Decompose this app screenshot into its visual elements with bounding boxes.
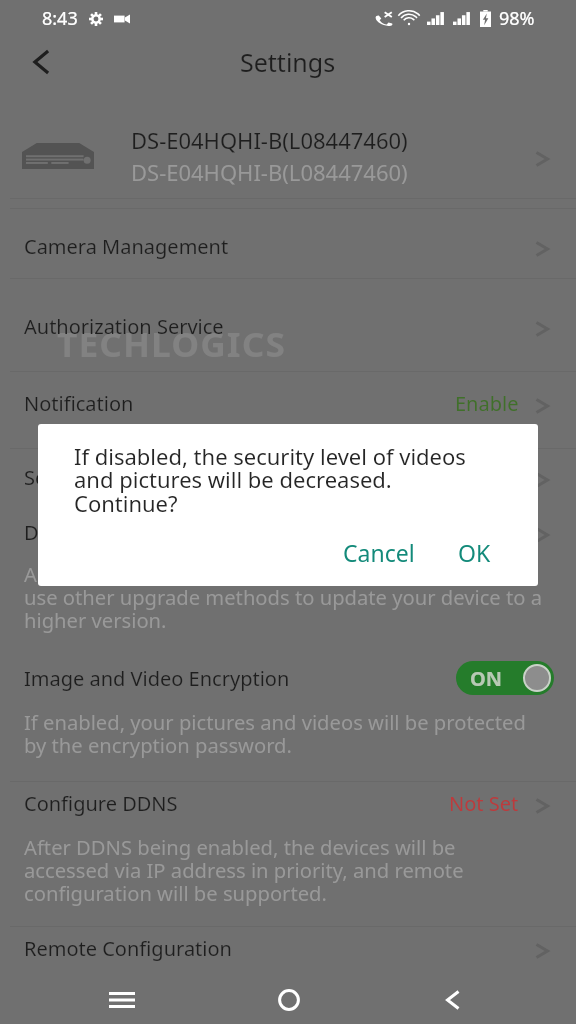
button[interactable]: OK (446, 530, 503, 574)
button[interactable]: Device Version (0, 507, 576, 557)
staticText: DS-E04HQHI-B(L08447460) (131, 157, 408, 187)
button[interactable]: Authorization Service (0, 301, 576, 351)
staticText: Authorization Service (24, 313, 224, 340)
staticText: 98% (499, 6, 535, 31)
button[interactable]: Back (0, 36, 82, 88)
button[interactable]: Security Question (0, 452, 576, 502)
staticText: Not Set (449, 790, 519, 817)
staticText: After DDNS being enabled, the devices wi… (24, 833, 576, 907)
staticText: DS-E04HQHI-B(L08447460) (131, 125, 408, 155)
staticText: Camera Management (24, 233, 229, 260)
button[interactable]: Configure DDNS (0, 778, 576, 828)
button[interactable]: Cancel (331, 530, 427, 574)
staticText: V4.30.000 build 2024 (324, 519, 519, 546)
button[interactable]: Remote Configuration (0, 923, 576, 973)
button[interactable]: Image and Video Encryption (0, 650, 576, 706)
staticText: Image and Video Encryption (24, 665, 290, 692)
staticText: Cancel (343, 537, 415, 568)
button[interactable]: Camera Management (0, 221, 576, 271)
staticText: Remote Configuration (24, 935, 232, 962)
button[interactable]: ON (456, 661, 554, 695)
staticText: A newer version is available. It is reco… (24, 560, 576, 634)
staticText: If enabled, your pictures and videos wil… (24, 708, 576, 759)
staticText: Notification (24, 390, 134, 417)
staticText: OK (458, 537, 491, 568)
button[interactable]: Back (423, 976, 483, 1024)
button[interactable]: Notification (0, 378, 576, 428)
staticText: Settings (240, 45, 336, 79)
staticText: ON (470, 665, 503, 692)
button[interactable]: Home (259, 976, 319, 1024)
staticText: 8:43 (42, 6, 78, 31)
staticText: Security Question (24, 464, 190, 491)
staticText: Configure DDNS (24, 790, 178, 817)
staticText: Device Version (24, 519, 162, 546)
staticText: If disabled, the security level of video… (74, 441, 514, 519)
button[interactable]: DS-E04HQHI-B(L08447460) (0, 101, 576, 211)
button[interactable]: Recent apps (92, 976, 152, 1024)
staticText: Enable (455, 390, 519, 417)
staticText: TECHLOGICS (57, 321, 287, 367)
